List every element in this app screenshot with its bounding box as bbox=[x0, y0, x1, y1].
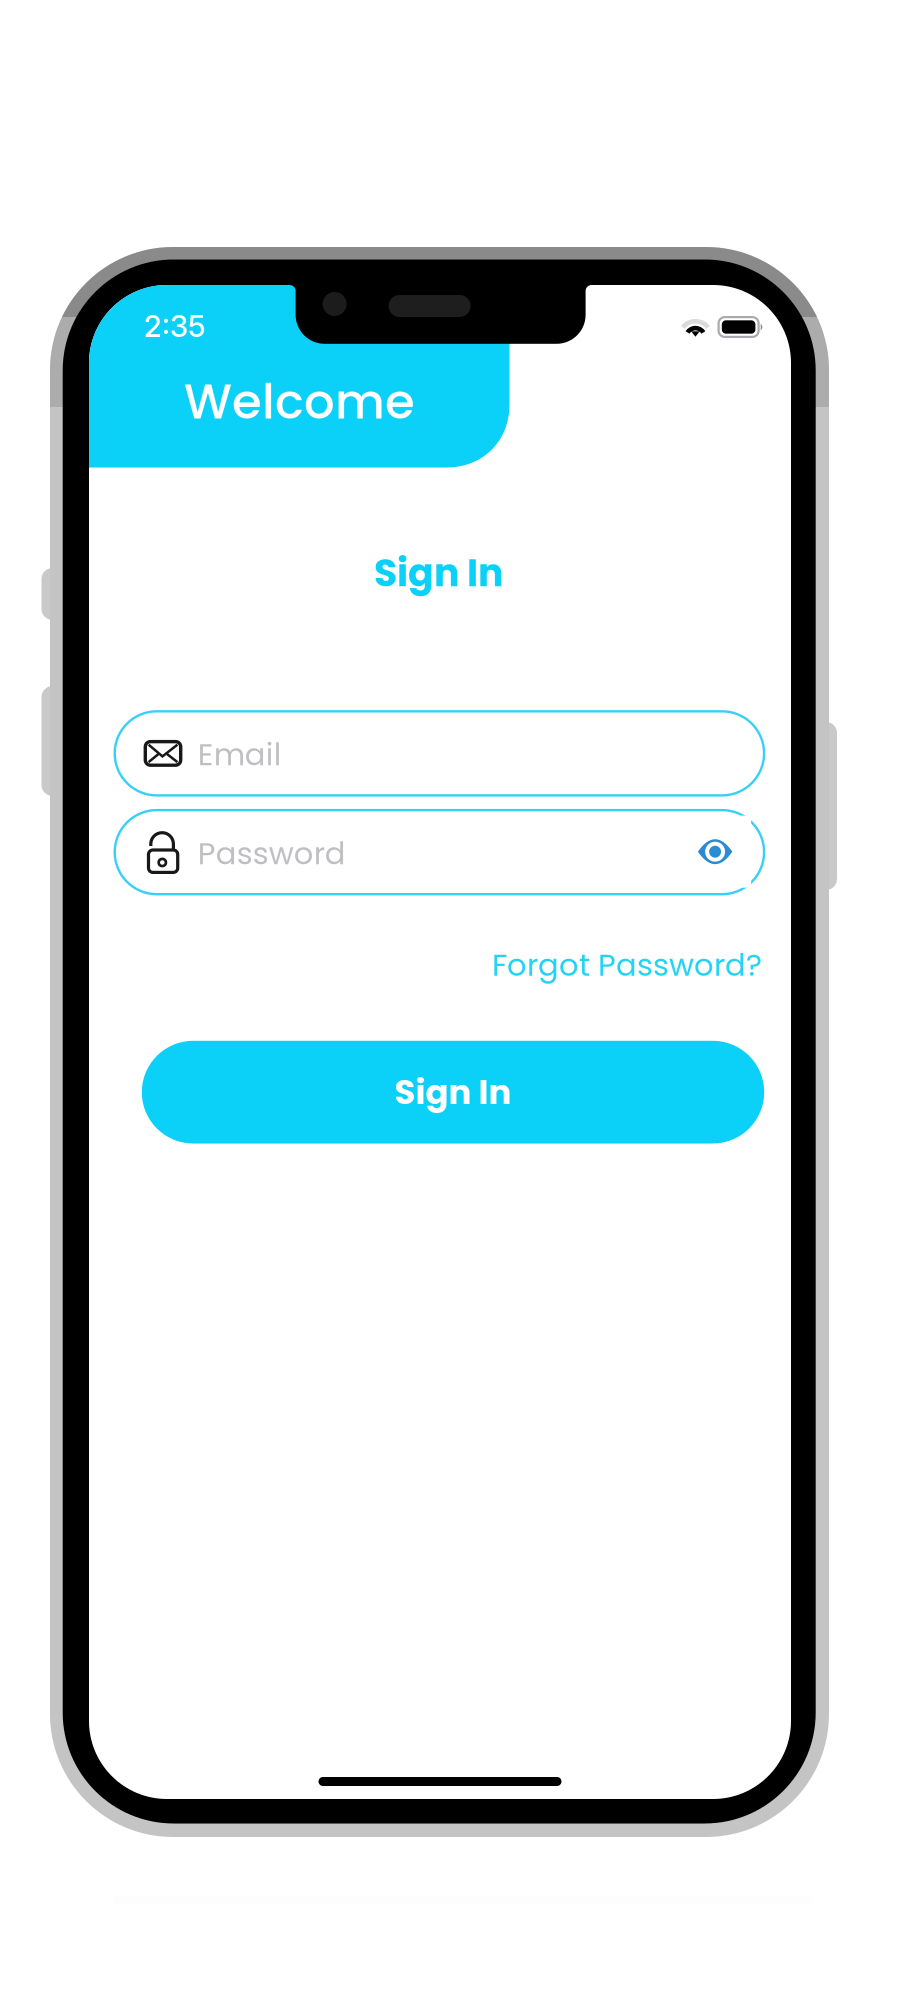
button[interactable]: Show password bbox=[679, 816, 751, 888]
staticText: Forgot Password? bbox=[492, 944, 762, 986]
button[interactable]: Sign In bbox=[142, 1041, 764, 1143]
staticText: 2:35 bbox=[144, 308, 206, 344]
staticText: Sign In bbox=[374, 546, 503, 599]
staticText: Welcome bbox=[184, 368, 415, 435]
staticText: Sign In bbox=[394, 1068, 511, 1116]
button[interactable]: Forgot Password? bbox=[472, 938, 762, 992]
staticText: Password bbox=[198, 832, 346, 875]
staticText: Email bbox=[198, 733, 282, 776]
